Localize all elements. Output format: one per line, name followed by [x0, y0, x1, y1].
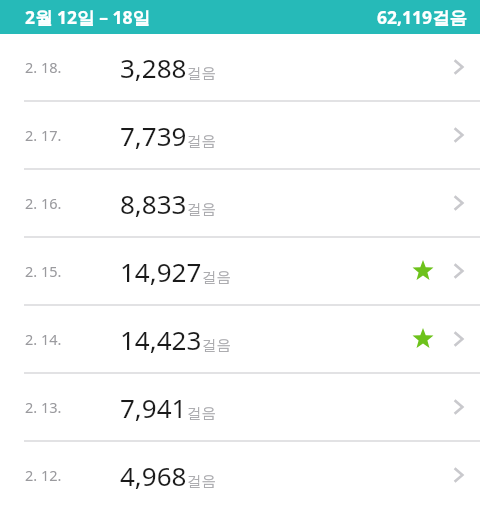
staticText: 2. 18.: [25, 57, 62, 77]
staticText: 14,423: [120, 322, 202, 357]
staticText: 2. 15.: [25, 261, 62, 281]
other: View details: [444, 117, 472, 153]
other: Goal achieved: [412, 328, 434, 350]
button[interactable]: 2. 12.: [0, 442, 480, 508]
other: View details: [444, 457, 472, 493]
staticText: 62,119걸음: [377, 5, 468, 29]
staticText: 7,941: [120, 390, 187, 425]
staticText: 걸음: [187, 132, 216, 150]
staticText: 2. 16.: [25, 193, 62, 213]
other: View details: [444, 185, 472, 221]
button[interactable]: 2. 14.: [0, 306, 480, 372]
button[interactable]: 2. 13.: [0, 374, 480, 440]
other: Goal achieved: [412, 260, 434, 282]
staticText: 걸음: [202, 336, 231, 354]
button[interactable]: 2. 17.: [0, 102, 480, 168]
staticText: 걸음: [187, 472, 216, 490]
button[interactable]: 2. 18.: [0, 34, 480, 100]
staticText: 2. 17.: [25, 125, 62, 145]
staticText: 걸음: [187, 404, 216, 422]
other: View details: [444, 389, 472, 425]
staticText: 걸음: [202, 268, 231, 286]
staticText: 7,739: [120, 118, 187, 153]
button[interactable]: 2. 15.: [0, 238, 480, 304]
other: View details: [444, 253, 472, 289]
staticText: 4,968: [120, 458, 187, 493]
staticText: 걸음: [187, 200, 216, 218]
staticText: 2. 13.: [25, 397, 62, 417]
staticText: 2월 12일 – 18일: [25, 5, 150, 29]
other: View details: [444, 321, 472, 357]
button[interactable]: 2. 16.: [0, 170, 480, 236]
staticText: 2. 14.: [25, 329, 62, 349]
other: View details: [444, 49, 472, 85]
staticText: 걸음: [187, 64, 216, 82]
staticText: 2. 12.: [25, 465, 62, 485]
staticText: 8,833: [120, 186, 187, 221]
staticText: 14,927: [120, 254, 202, 289]
staticText: 3,288: [120, 50, 187, 85]
